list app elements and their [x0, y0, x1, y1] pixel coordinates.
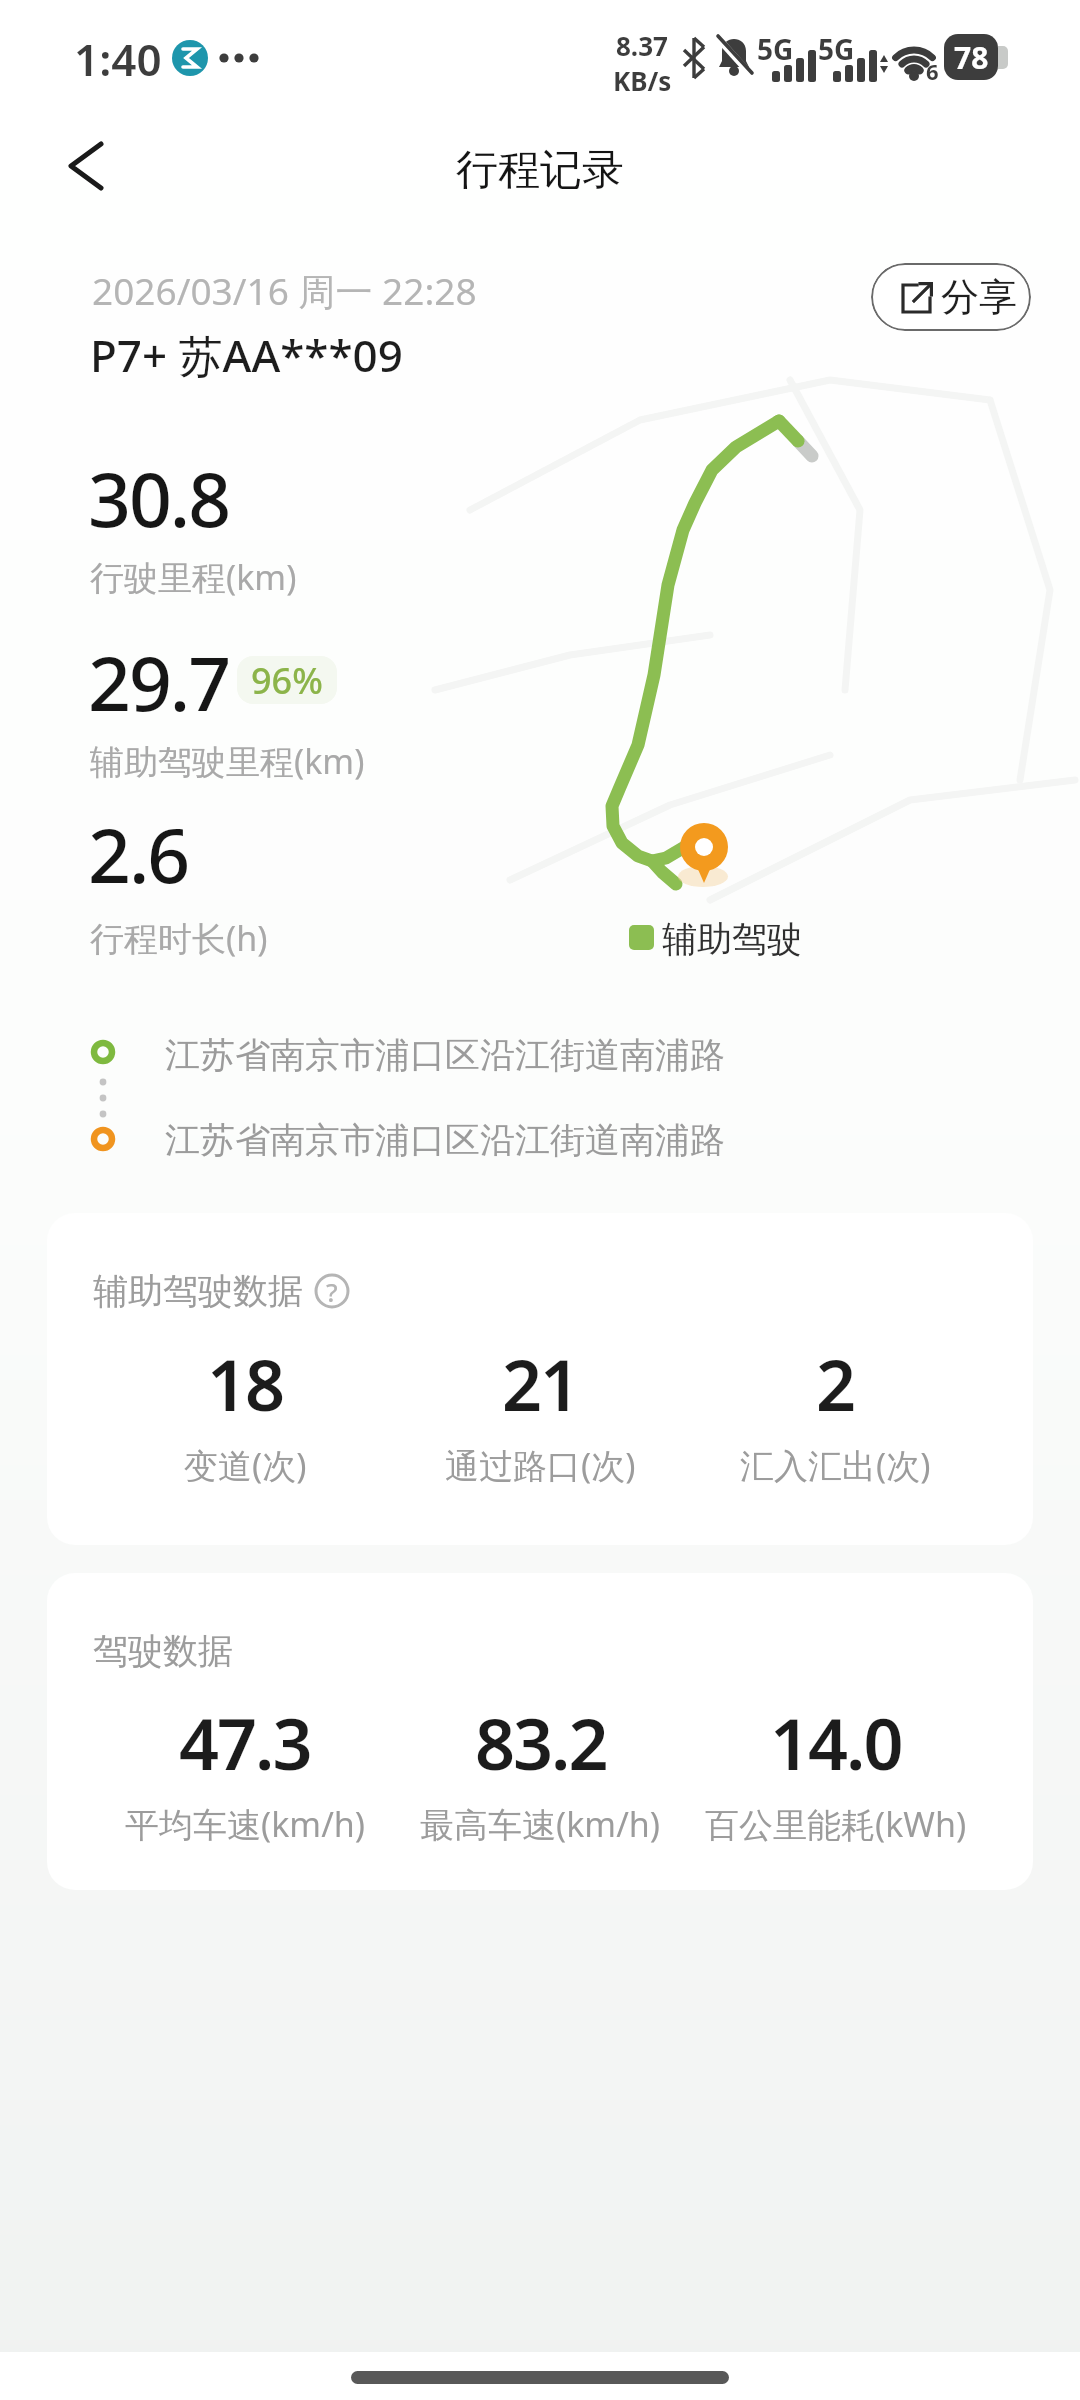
button[interactable]: 分享	[871, 263, 1031, 331]
staticText: 29.7	[88, 631, 230, 733]
staticText: 江苏省南京市浦口区沿江街道南浦路	[165, 1033, 725, 1077]
staticText: 最高车速(km/h)	[420, 1801, 661, 1847]
staticText: 江苏省南京市浦口区沿江街道南浦路	[165, 1118, 725, 1162]
staticText: 18	[207, 1336, 284, 1431]
staticText: 1:40	[74, 29, 162, 89]
staticText: 汇入汇出(次)	[740, 1442, 931, 1488]
staticText: 2	[816, 1336, 855, 1431]
staticText: 辅助驾驶数据	[93, 1269, 303, 1313]
staticText: 14.0	[770, 1695, 902, 1790]
staticText: 30.8	[88, 447, 230, 549]
staticText: 通过路口(次)	[445, 1442, 636, 1488]
staticText: 行程时长(h)	[90, 915, 268, 961]
staticText: 变道(次)	[184, 1442, 307, 1488]
staticText: 2.6	[88, 803, 189, 905]
staticText: ?	[326, 1274, 338, 1309]
staticText: 驾驶数据	[93, 1629, 233, 1673]
staticText: 6	[926, 56, 939, 86]
staticText: 辅助驾驶	[662, 917, 802, 961]
staticText: 78	[954, 37, 989, 78]
staticText: 5G	[818, 30, 855, 68]
staticText: 83.2	[475, 1695, 607, 1790]
button[interactable]	[65, 142, 110, 187]
staticText: 分享	[941, 273, 1017, 321]
staticText: 21	[502, 1336, 579, 1431]
staticText: 行驶里程(km)	[90, 554, 297, 600]
staticText: 8.37	[616, 28, 668, 63]
staticText: 47.3	[179, 1695, 311, 1790]
staticText: 辅助驾驶里程(km)	[90, 738, 365, 784]
staticText: 行程记录	[456, 144, 624, 197]
staticText: 百公里能耗(kWh)	[705, 1801, 967, 1847]
staticText: P7+ 苏AA***09	[90, 325, 403, 385]
staticText: KB/s	[613, 63, 672, 98]
staticText: 5G	[757, 30, 794, 68]
staticText: 平均车速(km/h)	[125, 1801, 366, 1847]
staticText: 96%	[251, 656, 323, 704]
staticText: 2026/03/16 周一 22:28	[92, 265, 477, 316]
